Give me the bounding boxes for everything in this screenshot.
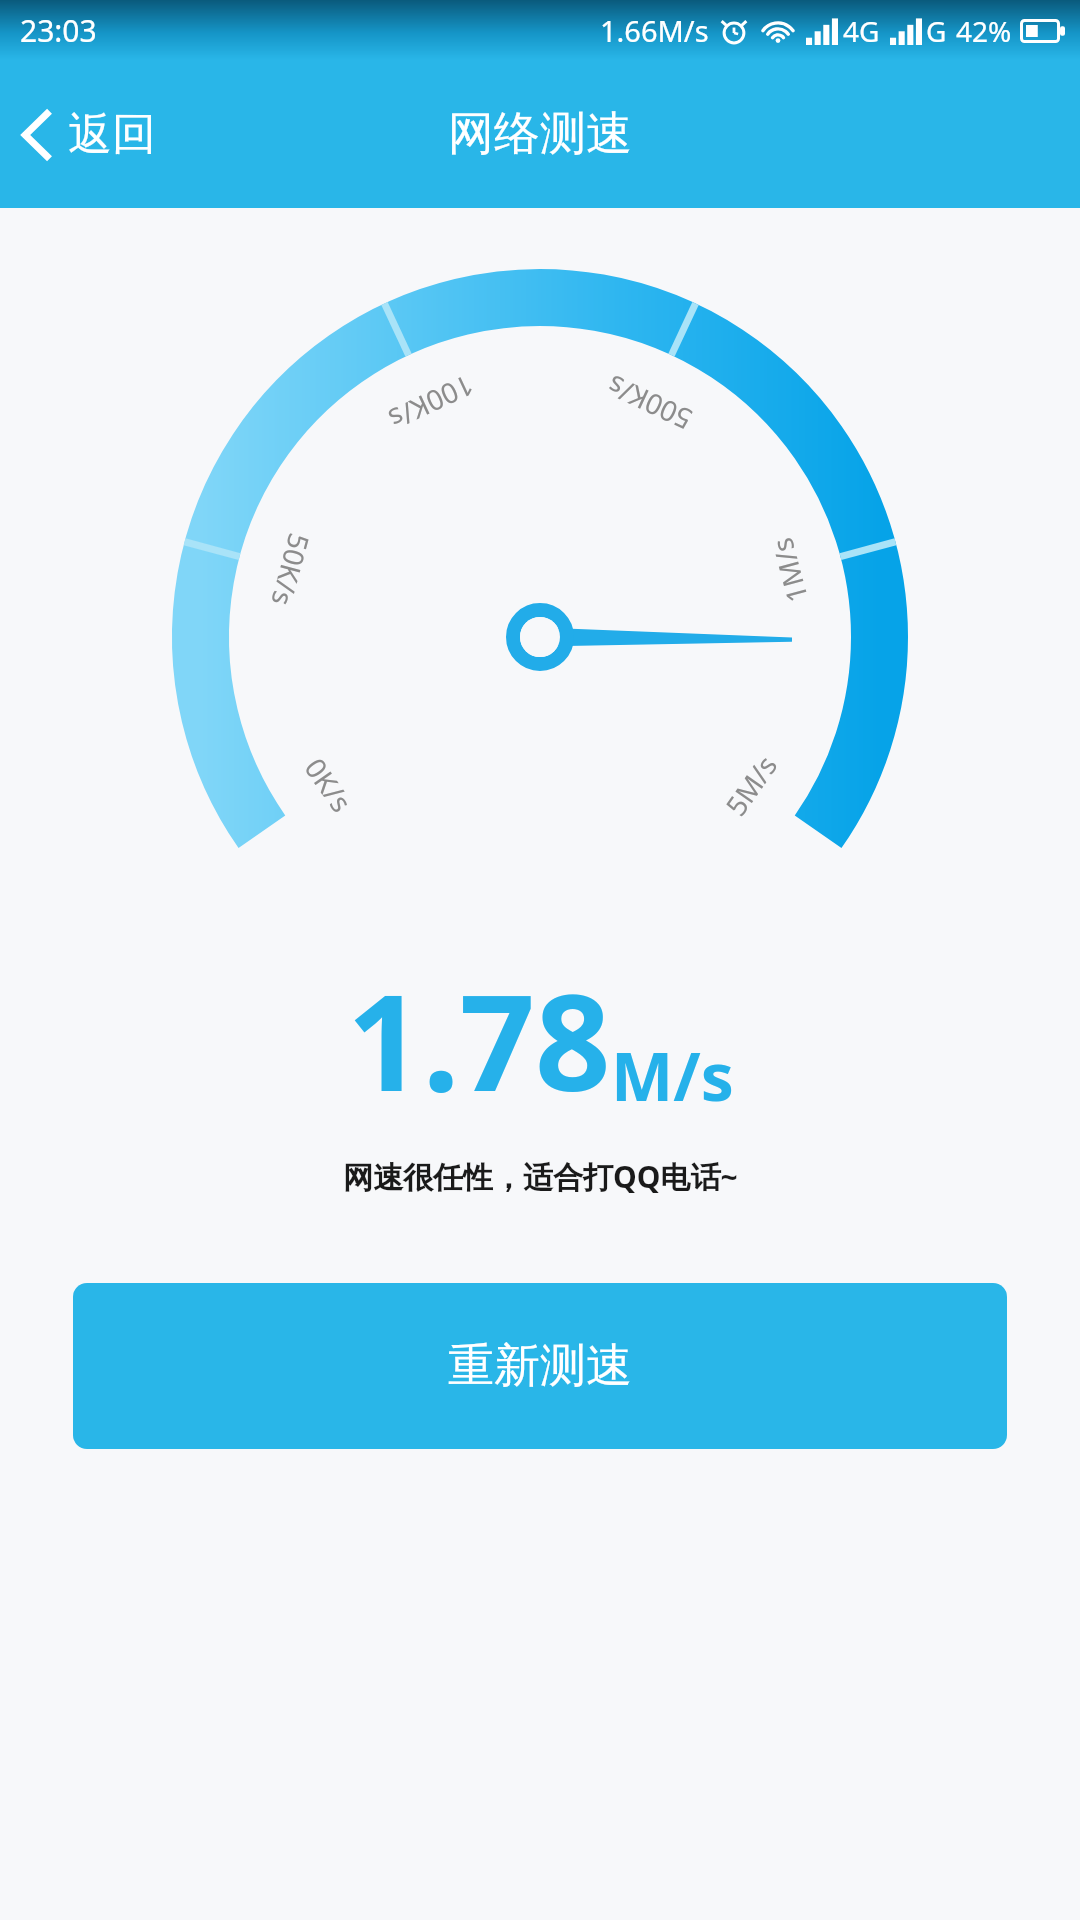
staticText: 500K/s: [600, 367, 698, 439]
staticText: 42%: [956, 12, 1012, 50]
staticText: 0K/s: [297, 750, 361, 820]
staticText: M/s: [611, 1030, 734, 1120]
staticText: 5M/s: [716, 747, 785, 823]
staticText: 1M/s: [762, 533, 816, 607]
staticText: 100K/s: [382, 367, 480, 439]
staticText: 1.78: [347, 950, 611, 1130]
staticText: 4G: [843, 12, 880, 50]
staticText: 网络测速: [448, 105, 632, 163]
staticText: 1.66M/s: [600, 11, 709, 50]
staticText: 23:03: [20, 10, 97, 51]
staticText: 重新测速: [448, 1337, 632, 1395]
staticText: 网速很任性，适合打QQ电话~: [343, 1156, 738, 1197]
staticText: 返回: [68, 107, 156, 162]
staticText: 50K/s: [263, 529, 319, 611]
button[interactable]: 返回: [0, 89, 184, 180]
staticText: G: [926, 12, 947, 50]
button[interactable]: 重新测速: [73, 1283, 1007, 1449]
